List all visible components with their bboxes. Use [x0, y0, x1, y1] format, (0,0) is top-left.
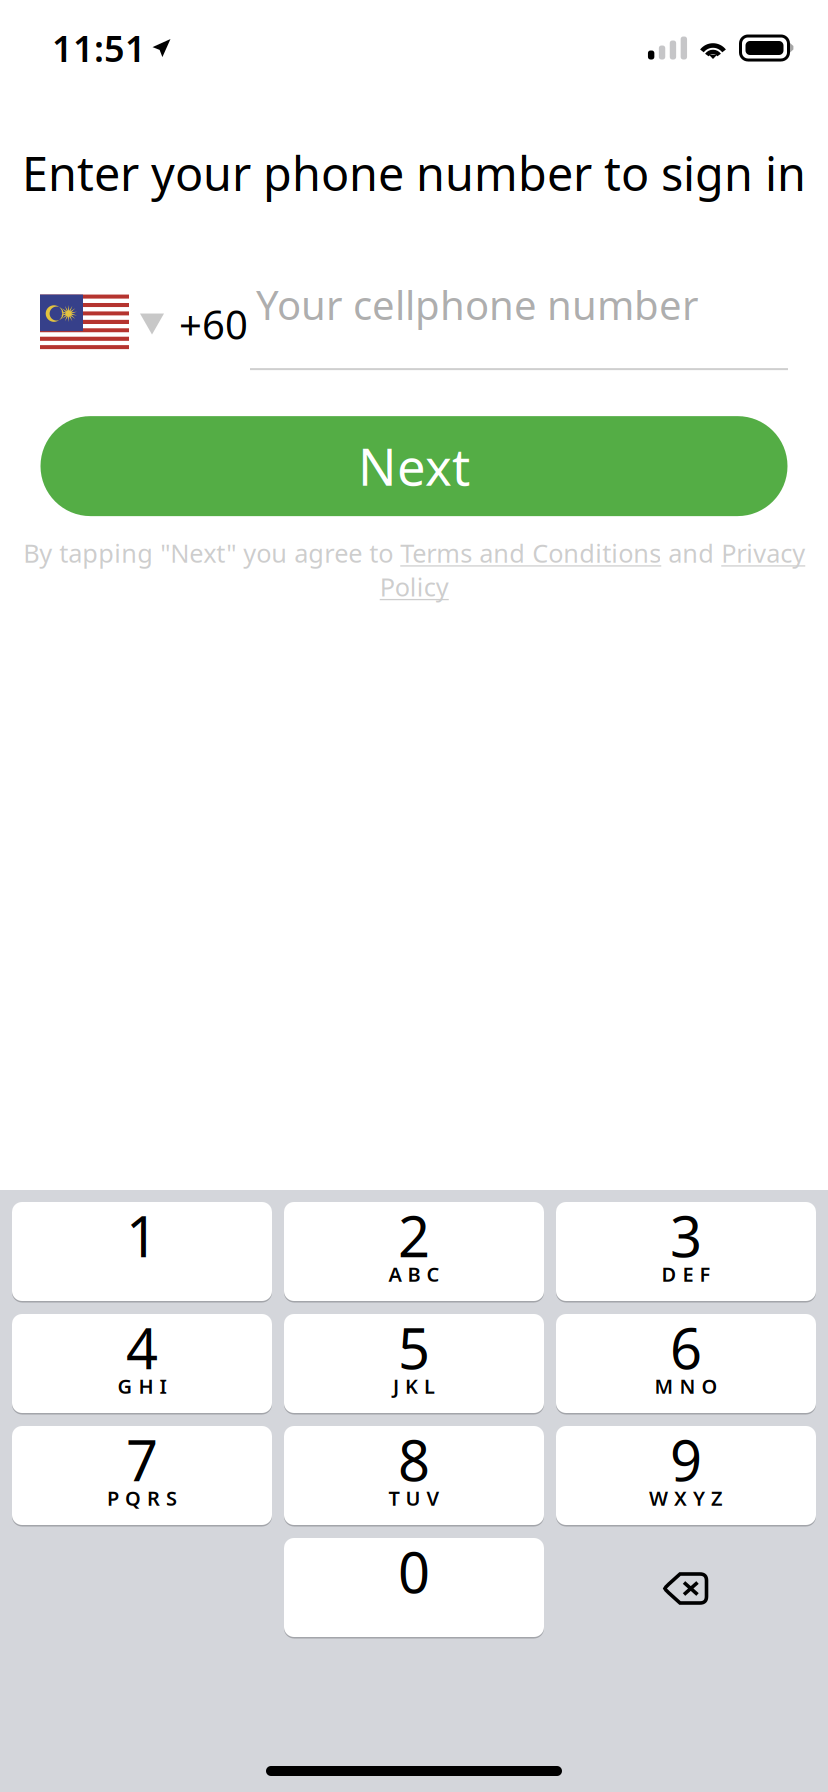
- button[interactable]: 9: [556, 1427, 816, 1526]
- staticText: +60: [179, 297, 248, 351]
- staticText: 1: [126, 1198, 158, 1273]
- staticText: 7: [126, 1422, 158, 1497]
- button[interactable]: 3: [556, 1203, 816, 1302]
- staticText: 2: [398, 1198, 430, 1273]
- staticText: Enter your phone number to sign in: [22, 142, 806, 204]
- staticText: 9: [670, 1422, 702, 1497]
- button[interactable]: 5: [284, 1315, 544, 1414]
- staticText: 3: [670, 1198, 702, 1273]
- staticText: A B C: [388, 1261, 439, 1287]
- staticText: J K L: [393, 1373, 435, 1399]
- button[interactable]: 0: [284, 1539, 544, 1638]
- button[interactable]: Delete: [556, 1539, 816, 1638]
- staticText: Next: [358, 432, 470, 500]
- button[interactable]: 6: [556, 1315, 816, 1414]
- staticText: 0: [398, 1534, 430, 1609]
- staticText: M N O: [654, 1373, 717, 1399]
- button[interactable]: 2: [284, 1203, 544, 1302]
- staticText: 8: [398, 1422, 430, 1497]
- staticText: T U V: [388, 1485, 439, 1511]
- button[interactable]: 8: [284, 1427, 544, 1526]
- button[interactable]: 4: [12, 1315, 272, 1414]
- staticText: Your cellphone number: [256, 278, 699, 331]
- staticText: 11:51: [52, 24, 146, 72]
- button[interactable]: 7: [12, 1427, 272, 1526]
- staticText: D E F: [661, 1261, 710, 1287]
- button[interactable]: 1: [12, 1203, 272, 1302]
- staticText: G H I: [117, 1373, 166, 1399]
- button[interactable]: Next: [40, 416, 787, 516]
- staticText: 5: [398, 1310, 430, 1385]
- staticText: W X Y Z: [649, 1485, 723, 1511]
- staticText: By tapping "Next" you agree to Terms and…: [23, 536, 805, 603]
- staticText: 4: [126, 1310, 158, 1385]
- staticText: P Q R S: [107, 1485, 177, 1511]
- staticText: 6: [670, 1310, 702, 1385]
